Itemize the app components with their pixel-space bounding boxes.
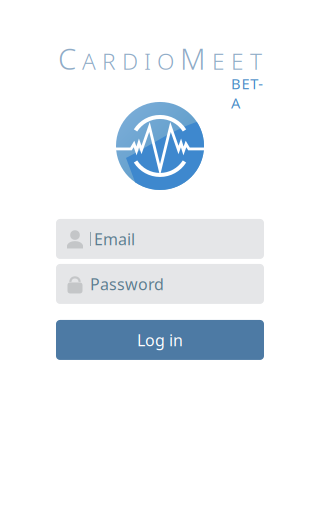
staticText: Log in <box>137 329 183 350</box>
staticText: CARDIOMEET <box>58 39 262 78</box>
staticText: Email <box>94 228 135 249</box>
button[interactable]: Password <box>56 264 264 304</box>
button[interactable]: Email <box>56 219 264 259</box>
staticText: Password <box>90 273 164 294</box>
staticText: BETA <box>231 74 267 93</box>
button[interactable]: Log in <box>56 320 264 360</box>
